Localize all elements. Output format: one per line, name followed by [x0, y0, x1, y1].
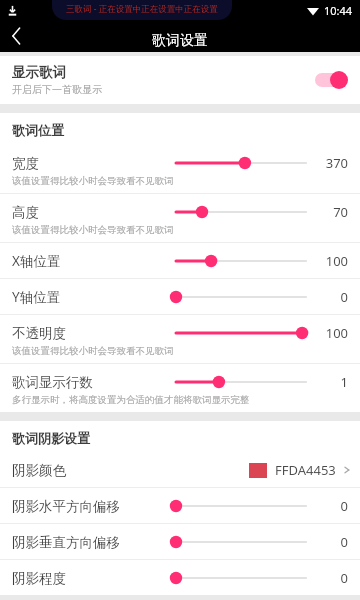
staticText: FFDA4453 — [275, 461, 336, 479]
button[interactable]: 宽度 — [0, 145, 360, 193]
button[interactable]: 高度 — [0, 194, 360, 242]
staticText: 该值设置得比较小时会导致看不见歌词 — [12, 224, 174, 236]
staticText: 歌词位置 — [12, 122, 64, 138]
button[interactable]: 阴影垂直方向偏移 — [0, 524, 360, 559]
staticText: 高度 — [12, 204, 39, 221]
staticText: 0 — [340, 288, 348, 306]
button[interactable]: Back — [0, 20, 32, 52]
staticText: Y轴位置 — [12, 288, 61, 306]
staticText: 歌词阴影设置 — [12, 430, 90, 446]
staticText: 宽度 — [12, 155, 39, 172]
staticText: 多行显示时，将高度设置为合适的值才能将歌词显示完整 — [12, 394, 250, 406]
button[interactable]: 阴影水平方向偏移 — [0, 488, 360, 523]
staticText: 不透明度 — [12, 325, 66, 342]
staticText: 0 — [340, 533, 348, 551]
staticText: 0 — [340, 569, 348, 587]
staticText: 歌词显示行数 — [12, 374, 93, 391]
staticText: 该值设置得比较小时会导致看不见歌词 — [12, 345, 174, 357]
button[interactable] — [312, 69, 350, 91]
staticText: X轴位置 — [12, 252, 61, 270]
staticText: 开启后下一首歌显示 — [12, 83, 102, 96]
staticText: 歌词设置 — [152, 32, 208, 50]
staticText: 三歌词 - 正在设置中正在设置中正在设置 — [66, 3, 218, 15]
staticText: 该值设置得比较小时会导致看不见歌词 — [12, 175, 174, 187]
button[interactable]: 阴影程度 — [0, 560, 360, 595]
staticText: 显示歌词 — [12, 64, 66, 81]
staticText: 阴影程度 — [12, 570, 66, 587]
staticText: 阴影颜色 — [12, 462, 66, 479]
button[interactable]: 阴影颜色 — [0, 453, 360, 487]
button[interactable]: 不透明度 — [0, 315, 360, 363]
staticText: 阴影水平方向偏移 — [12, 498, 120, 515]
staticText: 100 — [325, 252, 348, 270]
staticText: 1 — [340, 373, 348, 391]
staticText: 70 — [333, 203, 348, 221]
staticText: 10:44 — [324, 3, 353, 18]
staticText: 370 — [325, 154, 348, 172]
button[interactable]: 显示歌词 — [0, 56, 360, 104]
button[interactable]: Y轴位置 — [0, 279, 360, 314]
staticText: 阴影垂直方向偏移 — [12, 534, 120, 551]
staticText: 0 — [340, 497, 348, 515]
button[interactable]: 歌词显示行数 — [0, 364, 360, 412]
staticText: 100 — [325, 324, 348, 342]
button[interactable]: X轴位置 — [0, 243, 360, 278]
